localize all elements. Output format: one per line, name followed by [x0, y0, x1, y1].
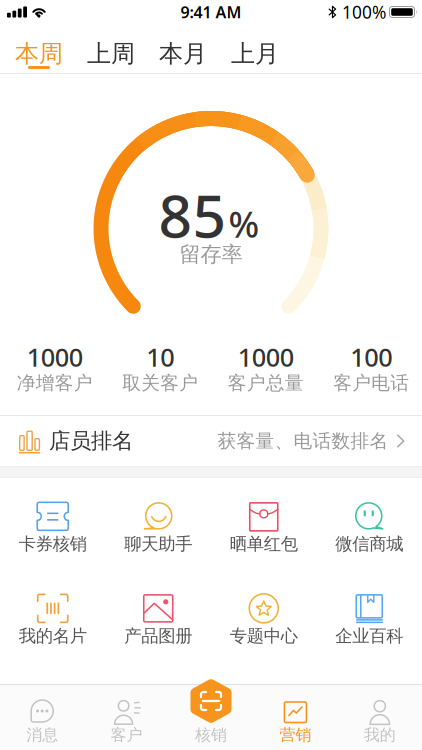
button[interactable]: 晒单红包: [211, 478, 316, 570]
staticText: %: [228, 200, 259, 248]
button[interactable]: 本周: [15, 39, 63, 71]
button[interactable]: 本月: [159, 39, 207, 71]
button[interactable]: 消息: [0, 684, 84, 745]
staticText: 取关客户: [122, 371, 198, 394]
button[interactable]: 产品图册: [105, 570, 211, 662]
button[interactable]: 上月: [231, 39, 279, 71]
staticText: 85: [158, 176, 226, 254]
staticText: 消息: [26, 725, 58, 745]
button[interactable]: 专题中心: [211, 570, 316, 662]
staticText: 我的名片: [19, 625, 87, 647]
staticText: 100: [350, 340, 392, 374]
button[interactable]: 企业百科: [316, 570, 422, 662]
staticText: 核销: [195, 725, 227, 745]
staticText: 客户总量: [228, 371, 304, 394]
staticText: 客户电话: [333, 371, 409, 394]
staticText: 产品图册: [124, 625, 192, 647]
staticText: 我的: [364, 725, 396, 745]
button[interactable]: 微信商城: [316, 478, 422, 570]
button[interactable]: 店员排名: [0, 416, 422, 466]
button[interactable]: 营销: [253, 684, 338, 745]
staticText: 上月: [231, 39, 279, 68]
button[interactable]: 我的: [338, 684, 422, 745]
button[interactable]: 卡券核销: [0, 478, 105, 570]
staticText: 100%: [342, 0, 386, 23]
button[interactable]: 聊天助手: [105, 478, 211, 570]
staticText: 本月: [159, 39, 207, 68]
staticText: 店员排名: [49, 428, 133, 454]
staticText: 卡券核销: [19, 533, 87, 555]
staticText: 晒单红包: [230, 533, 298, 555]
button[interactable]: 核销: [190, 678, 232, 724]
staticText: 1000: [238, 340, 294, 374]
staticText: 留存率: [179, 241, 242, 268]
button[interactable]: 核销: [169, 684, 253, 745]
staticText: 微信商城: [335, 533, 403, 555]
button[interactable]: 上周: [87, 39, 135, 71]
staticText: 获客量、电话数排名: [217, 429, 388, 452]
button[interactable]: 客户: [84, 684, 169, 745]
staticText: 聊天助手: [124, 533, 192, 555]
button[interactable]: 我的名片: [0, 570, 105, 662]
staticText: 上周: [87, 39, 135, 68]
staticText: 9:41 AM: [180, 1, 241, 23]
staticText: 企业百科: [335, 625, 403, 647]
staticText: 1000: [27, 340, 83, 374]
staticText: 本周: [15, 39, 63, 68]
staticText: 客户: [111, 725, 143, 745]
staticText: 10: [146, 340, 174, 374]
staticText: 净增客户: [17, 371, 93, 394]
staticText: 专题中心: [230, 625, 298, 647]
staticText: 营销: [279, 725, 311, 745]
